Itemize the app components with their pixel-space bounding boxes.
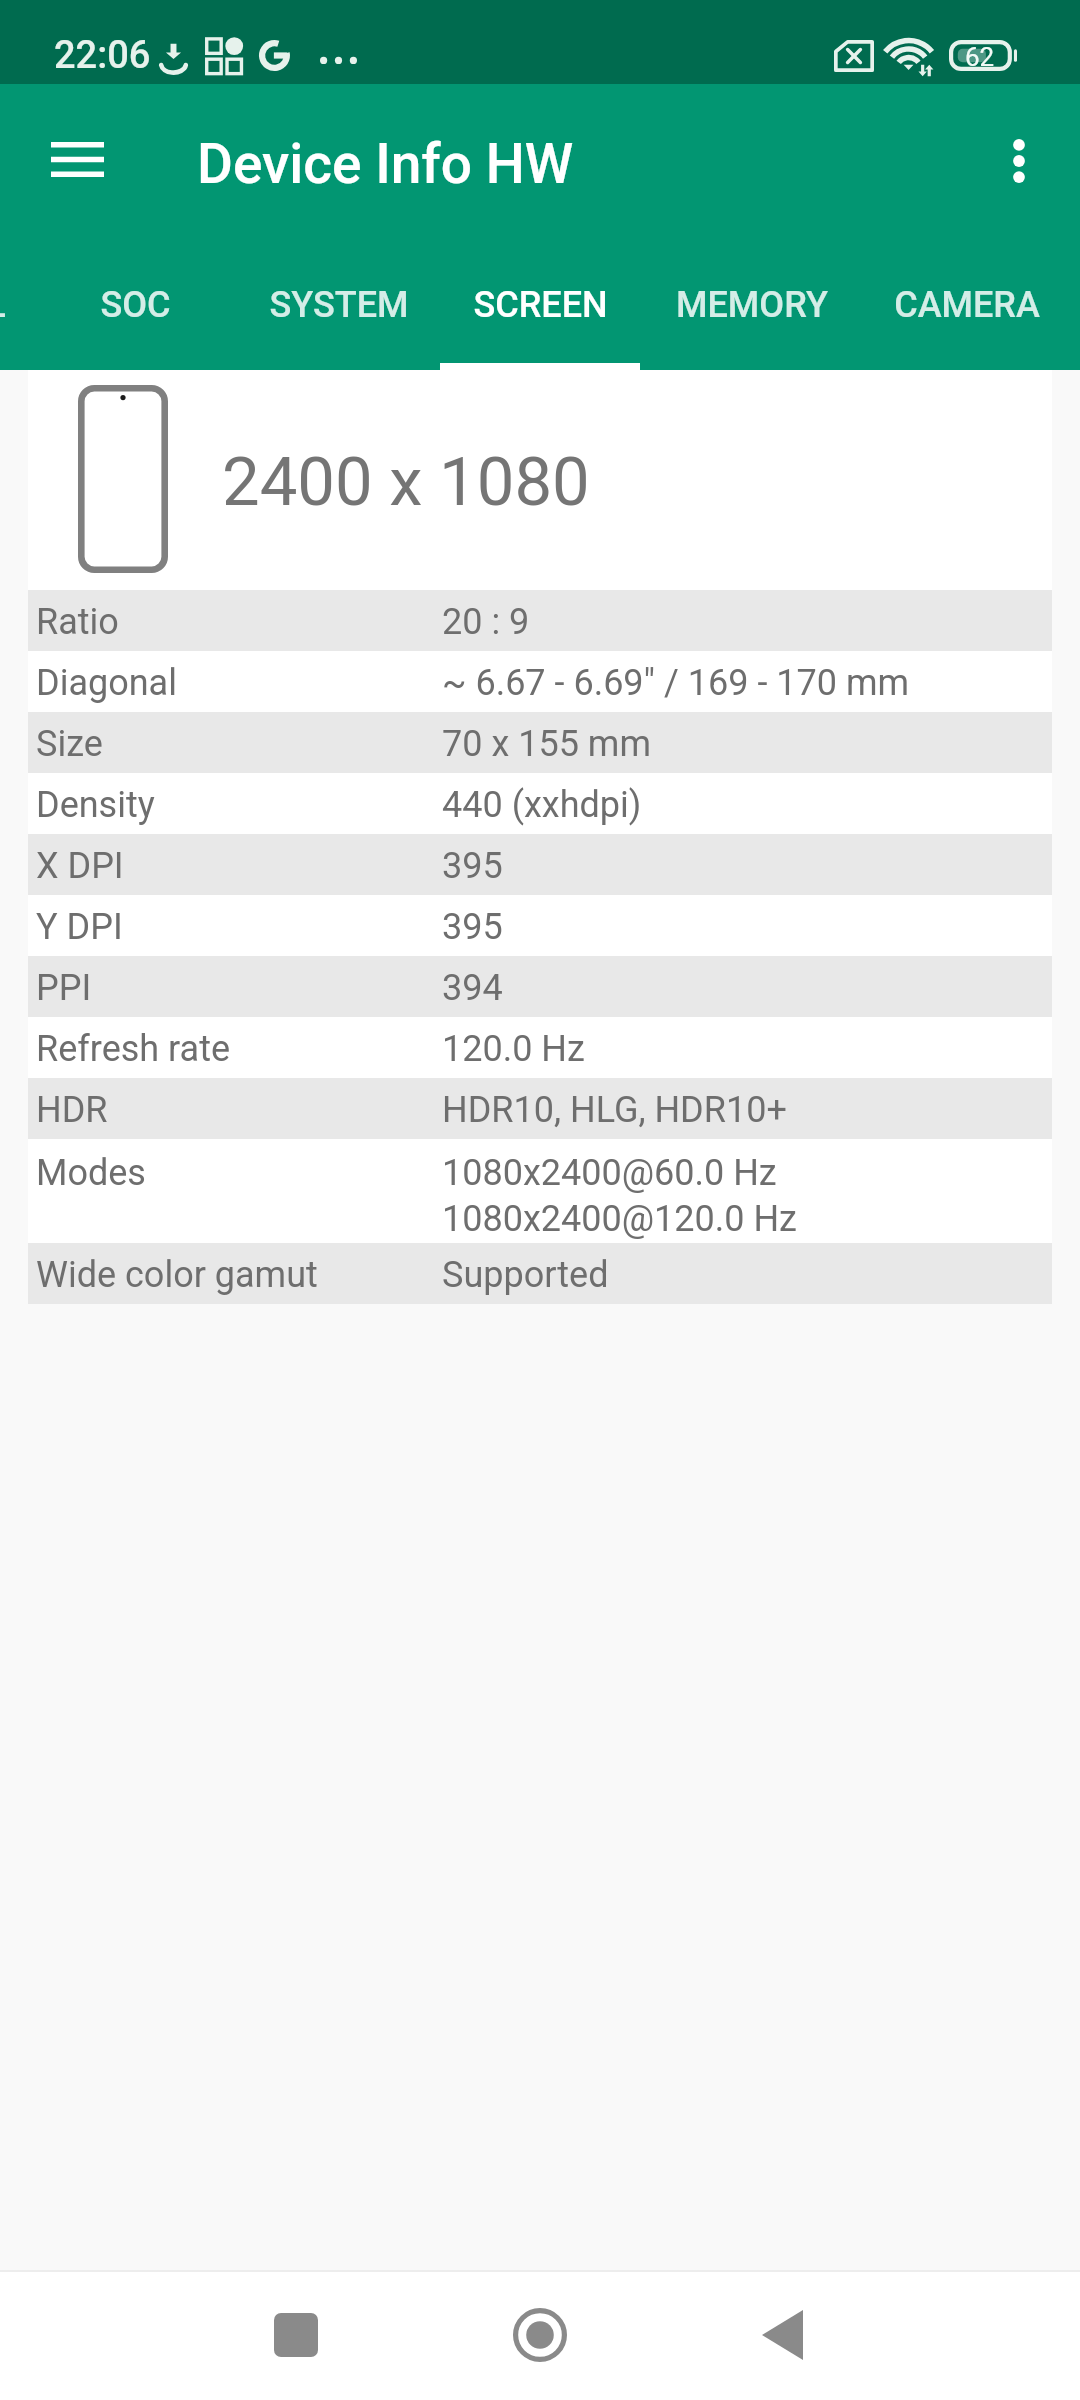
staticText: X DPI — [36, 842, 442, 888]
staticText: Size — [36, 720, 442, 766]
button[interactable]: Home — [491, 2272, 588, 2400]
staticText: HDR — [36, 1086, 442, 1132]
button[interactable]: SCREEN — [440, 238, 640, 370]
staticText: PPI — [36, 964, 442, 1010]
staticText: 440 (xxhdpi) — [442, 781, 642, 827]
button[interactable]: MEMORY — [645, 238, 859, 370]
button[interactable]: More options — [971, 113, 1067, 209]
staticText: Refresh rate — [36, 1025, 442, 1071]
staticText: 2400 x 1080 — [222, 443, 590, 522]
staticText: HDR10, HLG, HDR10+ — [442, 1086, 787, 1132]
button[interactable]: X DPI — [28, 834, 1052, 895]
staticText: 120.0 Hz — [442, 1025, 585, 1071]
staticText: 395 — [442, 903, 503, 949]
staticText: MEMORY — [676, 284, 828, 326]
staticText: GENERAL — [0, 284, 6, 326]
staticText: 22:06 — [54, 33, 151, 78]
button[interactable]: Ratio — [28, 590, 1052, 651]
staticText: CAMERA — [894, 284, 1040, 326]
staticText: SOC — [100, 284, 171, 326]
button[interactable]: CAMERA — [859, 238, 1075, 370]
button[interactable]: Modes — [28, 1139, 1052, 1243]
button[interactable]: Refresh rate — [28, 1017, 1052, 1078]
staticText: Supported — [442, 1251, 609, 1297]
staticText: SYSTEM — [269, 284, 409, 326]
staticText: 62 — [965, 42, 995, 72]
staticText: Modes — [36, 1149, 442, 1195]
staticText: 20 : 9 — [442, 598, 530, 644]
button[interactable]: HDR — [28, 1078, 1052, 1139]
button[interactable]: Y DPI — [28, 895, 1052, 956]
staticText: 394 — [442, 964, 503, 1010]
staticText: 395 — [442, 842, 503, 888]
button[interactable]: Wide color gamut — [28, 1243, 1052, 1304]
button[interactable]: SYSTEM — [238, 238, 440, 370]
button[interactable]: Diagonal — [28, 651, 1052, 712]
staticText: Diagonal — [36, 659, 442, 705]
staticText: 70 x 155 mm — [442, 720, 651, 766]
button[interactable]: Recent apps — [247, 2272, 344, 2400]
staticText: SCREEN — [473, 284, 608, 326]
button[interactable]: PPI — [28, 956, 1052, 1017]
staticText: 1080x2400@60.0 Hz 1080x2400@120.0 Hz — [442, 1149, 797, 1241]
button[interactable]: Size — [28, 712, 1052, 773]
button[interactable]: Open navigation drawer — [29, 111, 125, 207]
staticText: Ratio — [36, 598, 442, 644]
staticText: Device Info HW — [197, 132, 574, 196]
staticText: Wide color gamut — [36, 1251, 442, 1297]
button[interactable]: SOC — [32, 238, 238, 370]
button[interactable]: Density — [28, 773, 1052, 834]
staticText: Density — [36, 781, 442, 827]
button[interactable]: Back — [734, 2272, 831, 2400]
staticText: ~ 6.67 - 6.69" / 169 - 170 mm — [442, 659, 910, 705]
button[interactable]: GENERAL — [0, 238, 32, 370]
staticText: Y DPI — [36, 903, 442, 949]
